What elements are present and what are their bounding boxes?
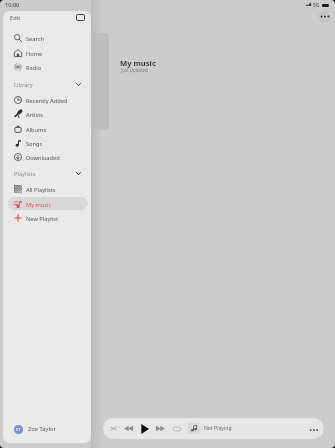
staticText: My music <box>26 201 52 209</box>
staticText: My music <box>120 58 156 68</box>
button[interactable]: Repeat <box>170 422 183 435</box>
button[interactable]: More options <box>318 10 331 23</box>
staticText: New Playlist <box>26 215 59 223</box>
staticText: Albums <box>26 126 47 134</box>
button[interactable]: All Playlists <box>8 182 88 195</box>
staticText: Search <box>26 35 45 43</box>
button[interactable]: Next <box>154 422 167 435</box>
staticText: 10:00 <box>5 1 20 9</box>
staticText: Home <box>26 50 43 58</box>
staticText: Radio <box>26 64 42 72</box>
staticText: Library <box>14 81 33 89</box>
button[interactable]: More <box>307 423 320 436</box>
button[interactable]: Play <box>138 422 151 435</box>
button[interactable]: Downloaded <box>8 150 88 163</box>
button[interactable]: ZT <box>10 420 84 438</box>
staticText: Not Playing <box>204 425 232 432</box>
button[interactable]: New Playlist <box>8 211 88 224</box>
staticText: Artists <box>26 111 44 119</box>
staticText: All Playlists <box>26 186 56 194</box>
button[interactable]: Edit <box>9 12 23 24</box>
staticText: Songs <box>26 140 43 148</box>
staticText: Recently Added <box>26 97 68 105</box>
button[interactable]: Previous <box>122 422 135 435</box>
button[interactable]: Playlists <box>7 168 87 182</box>
staticText: Just Updated <box>121 67 148 73</box>
button[interactable]: Songs <box>8 136 88 149</box>
button[interactable]: Home <box>8 46 88 59</box>
button[interactable]: Toggle sidebar <box>74 11 87 24</box>
button[interactable]: Albums <box>8 122 88 135</box>
staticText: Downloaded <box>26 154 60 162</box>
button[interactable]: Search <box>8 31 88 44</box>
button[interactable]: Shuffle <box>107 422 120 435</box>
button[interactable]: My music <box>8 197 88 210</box>
button[interactable]: Recently Added <box>8 93 88 106</box>
button[interactable]: Library <box>7 79 87 93</box>
staticText: Edit <box>10 14 21 22</box>
staticText: 5G <box>313 2 320 9</box>
staticText: Playlists <box>14 170 36 178</box>
staticText: ZT <box>16 427 21 432</box>
button[interactable]: Artists <box>8 107 88 120</box>
button[interactable]: Radio <box>8 60 88 73</box>
staticText: Zoe Taylor <box>28 425 56 433</box>
